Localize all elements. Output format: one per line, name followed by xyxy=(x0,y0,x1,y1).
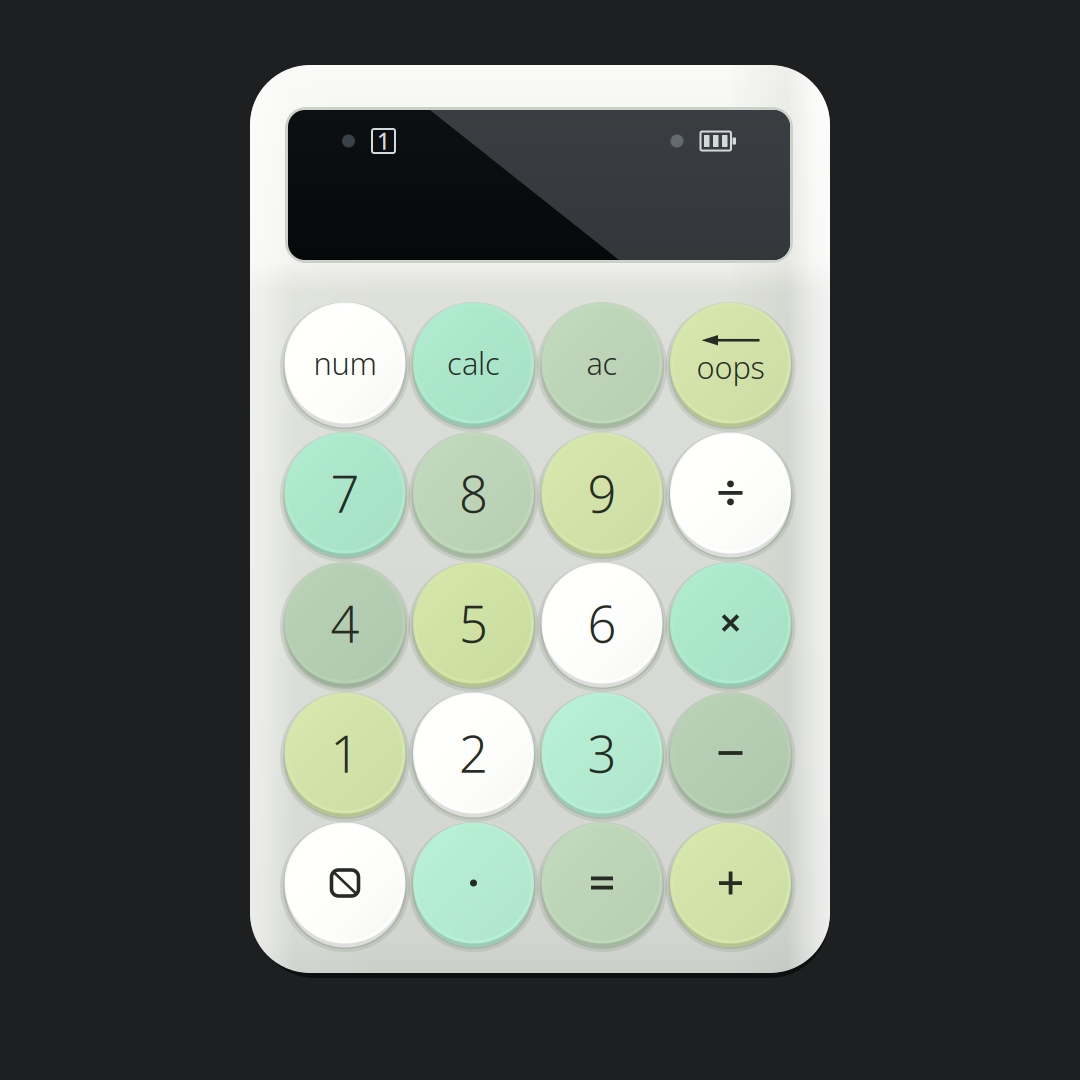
staticText: 2 xyxy=(459,719,488,787)
button[interactable]: ac xyxy=(537,297,667,429)
button[interactable]: Plus xyxy=(665,817,795,949)
button[interactable]: Zero xyxy=(280,817,410,949)
button[interactable]: num xyxy=(280,297,410,429)
button[interactable]: Decimal point xyxy=(408,817,538,949)
button[interactable]: Equals xyxy=(537,817,667,949)
staticText: ac xyxy=(586,343,617,383)
staticText: calc xyxy=(447,343,500,383)
staticText: 4 xyxy=(330,589,359,657)
button[interactable]: 4 xyxy=(280,557,410,689)
button[interactable]: 6 xyxy=(537,557,667,689)
button[interactable]: 7 xyxy=(280,427,410,559)
button[interactable]: Minus xyxy=(665,687,795,819)
staticText: 3 xyxy=(587,719,616,787)
button[interactable]: oops xyxy=(665,297,795,429)
staticText: 8 xyxy=(459,459,488,527)
staticText: 1 xyxy=(330,719,359,787)
button[interactable]: calc xyxy=(408,297,538,429)
staticText: 6 xyxy=(587,589,616,657)
staticText: 9 xyxy=(587,459,616,527)
button[interactable]: 3 xyxy=(537,687,667,819)
button[interactable]: 5 xyxy=(408,557,538,689)
staticText: 5 xyxy=(459,589,488,657)
button[interactable]: Divide xyxy=(665,427,795,559)
staticText: 7 xyxy=(330,459,359,527)
staticText: num xyxy=(313,343,376,383)
staticText: 1 xyxy=(377,126,390,156)
button[interactable]: 2 xyxy=(408,687,538,819)
button[interactable]: 1 xyxy=(280,687,410,819)
staticText: oops xyxy=(696,347,764,387)
button[interactable]: 9 xyxy=(537,427,667,559)
button[interactable]: 8 xyxy=(408,427,538,559)
button[interactable]: Multiply xyxy=(665,557,795,689)
